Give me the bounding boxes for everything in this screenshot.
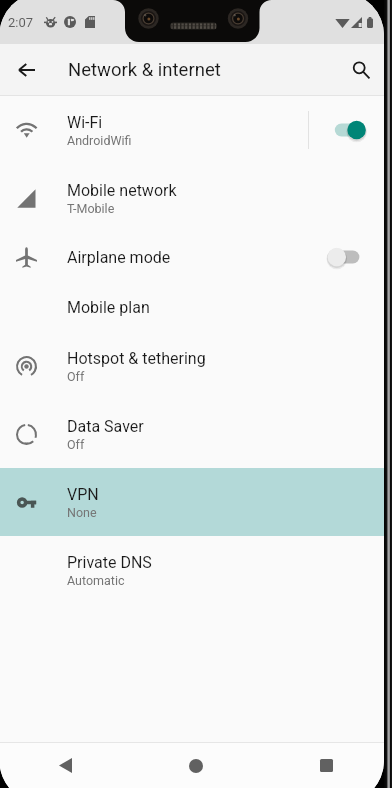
staticText: Airplane mode xyxy=(67,248,171,267)
button[interactable]: VPN xyxy=(0,468,392,536)
staticText: Mobile network xyxy=(67,181,177,200)
button[interactable]: Recent apps xyxy=(261,743,392,788)
staticText: None xyxy=(67,505,97,520)
staticText: T-Mobile xyxy=(67,201,115,216)
button[interactable]: Navigate up xyxy=(10,54,42,86)
button[interactable]: Mobile plan xyxy=(0,282,392,332)
staticText: Data Saver xyxy=(67,417,144,436)
button[interactable]: Wi-Fi switch xyxy=(316,96,392,164)
button[interactable]: Search settings xyxy=(344,53,378,87)
staticText: Automatic xyxy=(67,573,125,588)
button[interactable]: Private DNS xyxy=(0,536,392,604)
button[interactable]: Wi-Fi xyxy=(0,96,392,164)
button[interactable]: Data Saver xyxy=(0,400,392,468)
staticText: Private DNS xyxy=(67,553,152,572)
staticText: AndroidWifi xyxy=(67,133,132,148)
staticText: Off xyxy=(67,369,85,384)
staticText: Hotspot & tethering xyxy=(67,349,206,368)
button[interactable]: Home xyxy=(130,743,261,788)
staticText: Mobile plan xyxy=(67,298,150,317)
staticText: VPN xyxy=(67,485,99,504)
button[interactable]: Back xyxy=(0,743,130,788)
staticText: Off xyxy=(67,437,85,452)
staticText: Wi-Fi xyxy=(67,113,103,132)
staticText: Network & internet xyxy=(68,59,221,81)
button[interactable]: Hotspot & tethering xyxy=(0,332,392,400)
staticText: 2:07 xyxy=(8,15,34,30)
button[interactable]: Mobile network xyxy=(0,164,392,232)
button[interactable]: Airplane mode switch xyxy=(316,232,392,282)
button[interactable]: Airplane mode xyxy=(0,232,392,282)
